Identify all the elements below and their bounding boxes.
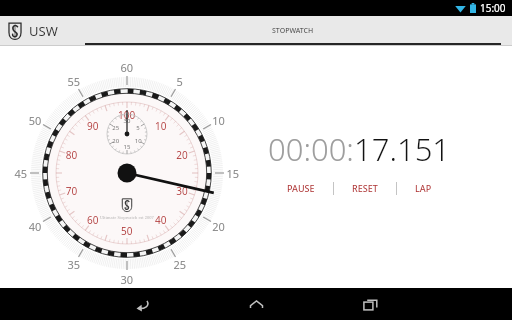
staticText: RESET (352, 182, 378, 194)
button[interactable]: Back (114, 288, 170, 320)
button[interactable]: LAP (403, 178, 444, 198)
staticText: 15:00 (480, 1, 506, 15)
staticText: USW (29, 22, 58, 40)
button[interactable]: Home (228, 288, 284, 320)
button[interactable]: Ultimate Stopwatch (8, 22, 22, 40)
button[interactable]: PAUSE (275, 178, 327, 198)
button[interactable]: Recent apps (342, 288, 398, 320)
staticText: 00:00: (268, 128, 354, 170)
staticText: LAP (415, 182, 432, 194)
staticText: STOPWATCH (272, 26, 314, 36)
staticText: PAUSE (287, 182, 315, 194)
staticText: 17.151 (354, 128, 451, 170)
button[interactable]: RESET (340, 178, 390, 198)
button[interactable]: STOPWATCH (74, 16, 512, 46)
